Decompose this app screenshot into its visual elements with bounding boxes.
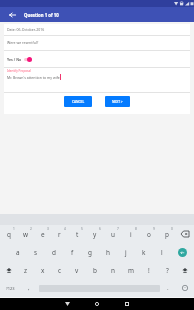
button[interactable]: v <box>68 261 86 279</box>
button[interactable]: NEXT > <box>105 96 130 107</box>
staticText: h <box>106 248 110 257</box>
button[interactable]: Recents <box>112 298 142 310</box>
button[interactable]: y <box>86 225 104 243</box>
button[interactable]: u <box>104 225 122 243</box>
button[interactable]: , <box>20 279 38 297</box>
button[interactable]: Backspace <box>176 225 194 243</box>
button[interactable]: o <box>140 225 158 243</box>
staticText: 5 <box>81 227 83 231</box>
button[interactable]: f <box>63 243 81 261</box>
staticText: ?123 <box>6 286 15 291</box>
staticText: Identify Proposal <box>7 69 31 73</box>
staticText: s <box>34 248 38 257</box>
staticText: l <box>161 248 163 257</box>
button[interactable]: m <box>122 261 140 279</box>
staticText: z <box>24 266 28 275</box>
staticText: a <box>16 248 20 257</box>
staticText: g <box>88 248 92 257</box>
staticText: d <box>52 248 56 257</box>
staticText: 1 <box>13 227 15 231</box>
staticText: c <box>58 266 62 275</box>
button[interactable]: z <box>17 261 34 279</box>
staticText: Were we resentful? <box>7 40 39 45</box>
button[interactable]: Back <box>52 298 82 310</box>
staticText: 0 <box>171 227 173 231</box>
staticText: . <box>167 284 169 292</box>
staticText: f <box>71 248 74 257</box>
staticText: 7 <box>117 227 119 231</box>
button[interactable]: ! <box>140 261 158 279</box>
staticText: 9 <box>153 227 155 231</box>
other: Shift <box>0 261 17 279</box>
staticText: i <box>130 230 132 239</box>
staticText: m <box>128 266 134 275</box>
button[interactable]: n <box>104 261 122 279</box>
staticText: ? <box>166 266 169 275</box>
button[interactable]: c <box>51 261 68 279</box>
staticText: w <box>23 230 29 239</box>
staticText: p <box>165 230 169 239</box>
staticText: CANCEL <box>72 100 85 104</box>
button[interactable]: Emoji <box>176 279 194 297</box>
staticText: y <box>93 230 97 239</box>
button[interactable]: Yes No toggle <box>7 57 32 62</box>
button[interactable]: a <box>9 243 27 261</box>
staticText: x <box>41 266 45 275</box>
staticText: Mr. Brown's attention to my wife <box>7 75 60 80</box>
staticText: 3 <box>47 227 49 231</box>
staticText: t <box>76 230 79 239</box>
staticText: Date: 06-October-2016 <box>7 27 45 32</box>
button[interactable]: h <box>99 243 117 261</box>
staticText: , <box>28 284 30 292</box>
button[interactable]: p <box>158 225 176 243</box>
staticText: NEXT > <box>112 100 123 104</box>
staticText: n <box>111 266 115 275</box>
button[interactable]: w <box>17 225 34 243</box>
button[interactable]: x <box>34 261 51 279</box>
button[interactable]: j <box>117 243 135 261</box>
button[interactable]: Shift <box>0 261 17 279</box>
staticText: j <box>125 248 127 257</box>
staticText: u <box>111 230 115 239</box>
button[interactable]: e <box>34 225 51 243</box>
button[interactable]: Enter <box>171 243 194 261</box>
button[interactable]: q <box>0 225 17 243</box>
button[interactable]: t <box>68 225 86 243</box>
button[interactable]: k <box>135 243 153 261</box>
staticText: Yes / No <box>7 57 22 62</box>
button[interactable]: ? <box>158 261 176 279</box>
button[interactable]: l <box>153 243 171 261</box>
staticText: v <box>75 266 79 275</box>
button[interactable]: r <box>51 225 68 243</box>
staticText: 8 <box>135 227 137 231</box>
button[interactable]: CANCEL <box>64 96 92 107</box>
staticText: 6 <box>99 227 101 231</box>
staticText: k <box>142 248 146 257</box>
button[interactable]: Back <box>0 7 24 22</box>
button[interactable]: ?123 <box>0 279 21 297</box>
button[interactable]: d <box>45 243 63 261</box>
staticText: o <box>147 230 151 239</box>
staticText: b <box>93 266 97 275</box>
staticText: q <box>7 230 11 239</box>
button[interactable]: Home <box>82 298 112 310</box>
button[interactable]: Shift <box>176 261 194 279</box>
button[interactable]: s <box>27 243 45 261</box>
button[interactable]: g <box>81 243 99 261</box>
staticText: Question 1 of 10 <box>24 12 59 18</box>
staticText: r <box>58 230 61 239</box>
button[interactable]: i <box>122 225 140 243</box>
staticText: 2 <box>30 227 32 231</box>
button[interactable]: b <box>86 261 104 279</box>
staticText: 4 <box>64 227 66 231</box>
staticText: e <box>41 230 45 239</box>
staticText: ! <box>148 266 150 275</box>
